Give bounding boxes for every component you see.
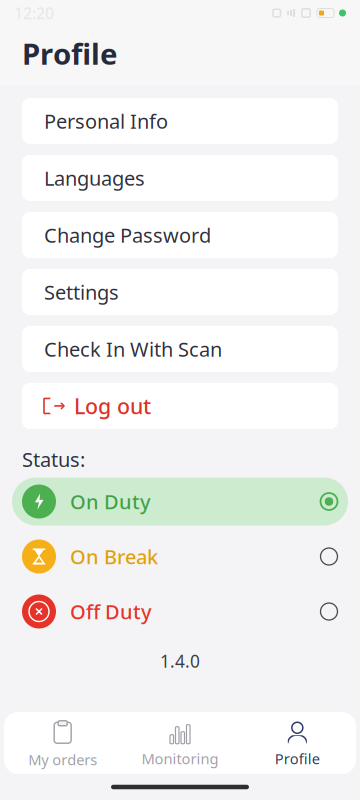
button[interactable]: Settings: [22, 269, 338, 315]
staticText: Status:: [22, 446, 85, 473]
button[interactable]: On Break: [12, 532, 348, 580]
staticText: Personal Info: [44, 108, 168, 134]
button[interactable]: Off Duty: [12, 587, 348, 635]
staticText: Log out: [74, 392, 151, 420]
staticText: My orders: [28, 750, 97, 769]
button[interactable]: Personal Info: [22, 98, 338, 144]
button[interactable]: Log out: [22, 383, 338, 429]
button[interactable]: Languages: [22, 155, 338, 201]
button[interactable]: Check In With Scan: [22, 326, 338, 372]
button[interactable]: On Duty: [12, 477, 348, 525]
staticText: On Duty: [70, 488, 151, 515]
staticText: Monitoring: [141, 749, 218, 768]
staticText: Profile: [275, 749, 320, 768]
staticText: Languages: [44, 165, 145, 191]
staticText: Settings: [44, 279, 119, 305]
staticText: Off Duty: [70, 598, 152, 625]
staticText: Change Password: [44, 222, 211, 248]
staticText: 12:20: [14, 2, 54, 24]
staticText: Profile: [22, 34, 118, 73]
button[interactable]: My orders: [4, 716, 121, 774]
button[interactable]: Monitoring: [121, 716, 239, 774]
staticText: 1.4.0: [160, 649, 200, 672]
button[interactable]: Change Password: [22, 212, 338, 258]
staticText: Check In With Scan: [44, 336, 222, 362]
staticText: On Break: [70, 543, 158, 570]
button[interactable]: Profile: [239, 716, 356, 774]
